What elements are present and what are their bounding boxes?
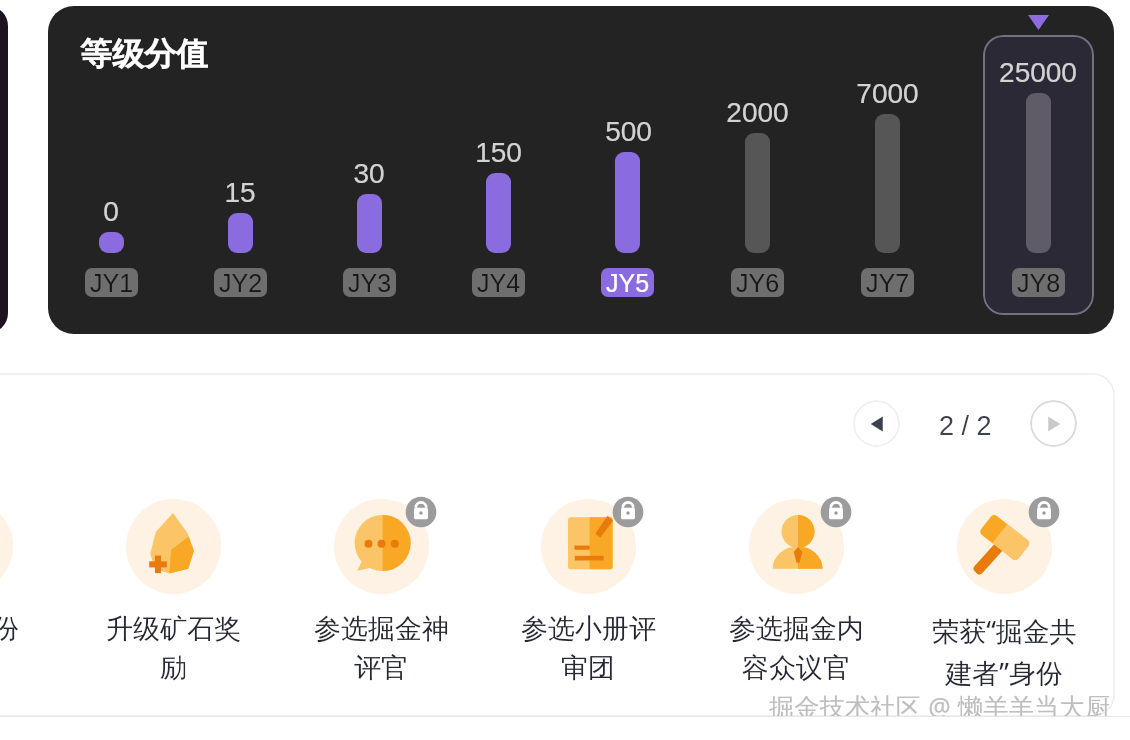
staticText: 荣获“掘金共: [932, 612, 1077, 649]
staticText: 建者”身份: [945, 654, 1063, 691]
button[interactable]: [0, 6, 8, 333]
button[interactable]: JY6: [731, 268, 784, 297]
staticText: 参选掘金神: [314, 612, 449, 646]
staticText: 达人身份: [0, 612, 19, 646]
staticText: 参选小册评: [521, 612, 656, 646]
staticText: 升级矿石奖: [106, 612, 241, 646]
staticText: 150: [475, 137, 522, 168]
button[interactable]: 参选掘金神评官: [286, 488, 476, 688]
staticText: 15: [224, 177, 256, 208]
staticText: 0: [103, 196, 119, 227]
button[interactable]: 参选掘金内容众议官: [701, 488, 891, 688]
staticText: JY6: [736, 269, 780, 297]
staticText: 参选掘金内: [729, 612, 864, 646]
staticText: JY3: [348, 269, 392, 297]
staticText: 容众议官: [742, 651, 850, 685]
staticText: 7000: [856, 78, 919, 109]
staticText: 评官: [354, 651, 408, 685]
staticText: JY7: [866, 269, 910, 297]
staticText: 励: [160, 651, 187, 685]
staticText: 30: [353, 158, 385, 189]
button[interactable]: 升级矿石奖励: [78, 488, 268, 688]
staticText: 掘金技术社区 @ 懒羊羊当大厨: [769, 689, 1111, 716]
button[interactable]: Previous page: [853, 400, 900, 447]
staticText: JY8: [1017, 269, 1061, 297]
button[interactable]: JY4: [472, 268, 525, 297]
button[interactable]: JY7: [861, 268, 914, 297]
staticText: 审团: [561, 651, 615, 685]
button[interactable]: 荣获掘金共建者身份: [909, 488, 1099, 688]
button[interactable]: 达人身份: [0, 488, 60, 688]
staticText: 等级分值: [80, 34, 208, 74]
button[interactable]: JY1: [85, 268, 138, 297]
staticText: 2 / 2: [939, 411, 992, 441]
button[interactable]: JY2: [214, 268, 267, 297]
button[interactable]: JY5: [601, 268, 654, 297]
staticText: JY2: [219, 269, 263, 297]
staticText: JY4: [477, 269, 521, 297]
staticText: JY1: [90, 269, 134, 297]
button[interactable]: JY3: [343, 268, 396, 297]
button[interactable]: [48, 6, 1114, 334]
staticText: 500: [605, 116, 652, 147]
button[interactable]: 参选小册评审团: [493, 488, 683, 688]
staticText: JY5: [606, 269, 650, 297]
staticText: 25000: [999, 57, 1077, 88]
button[interactable]: Next page: [1030, 400, 1077, 447]
button[interactable]: JY8: [1012, 268, 1065, 297]
staticText: 2000: [726, 97, 789, 128]
